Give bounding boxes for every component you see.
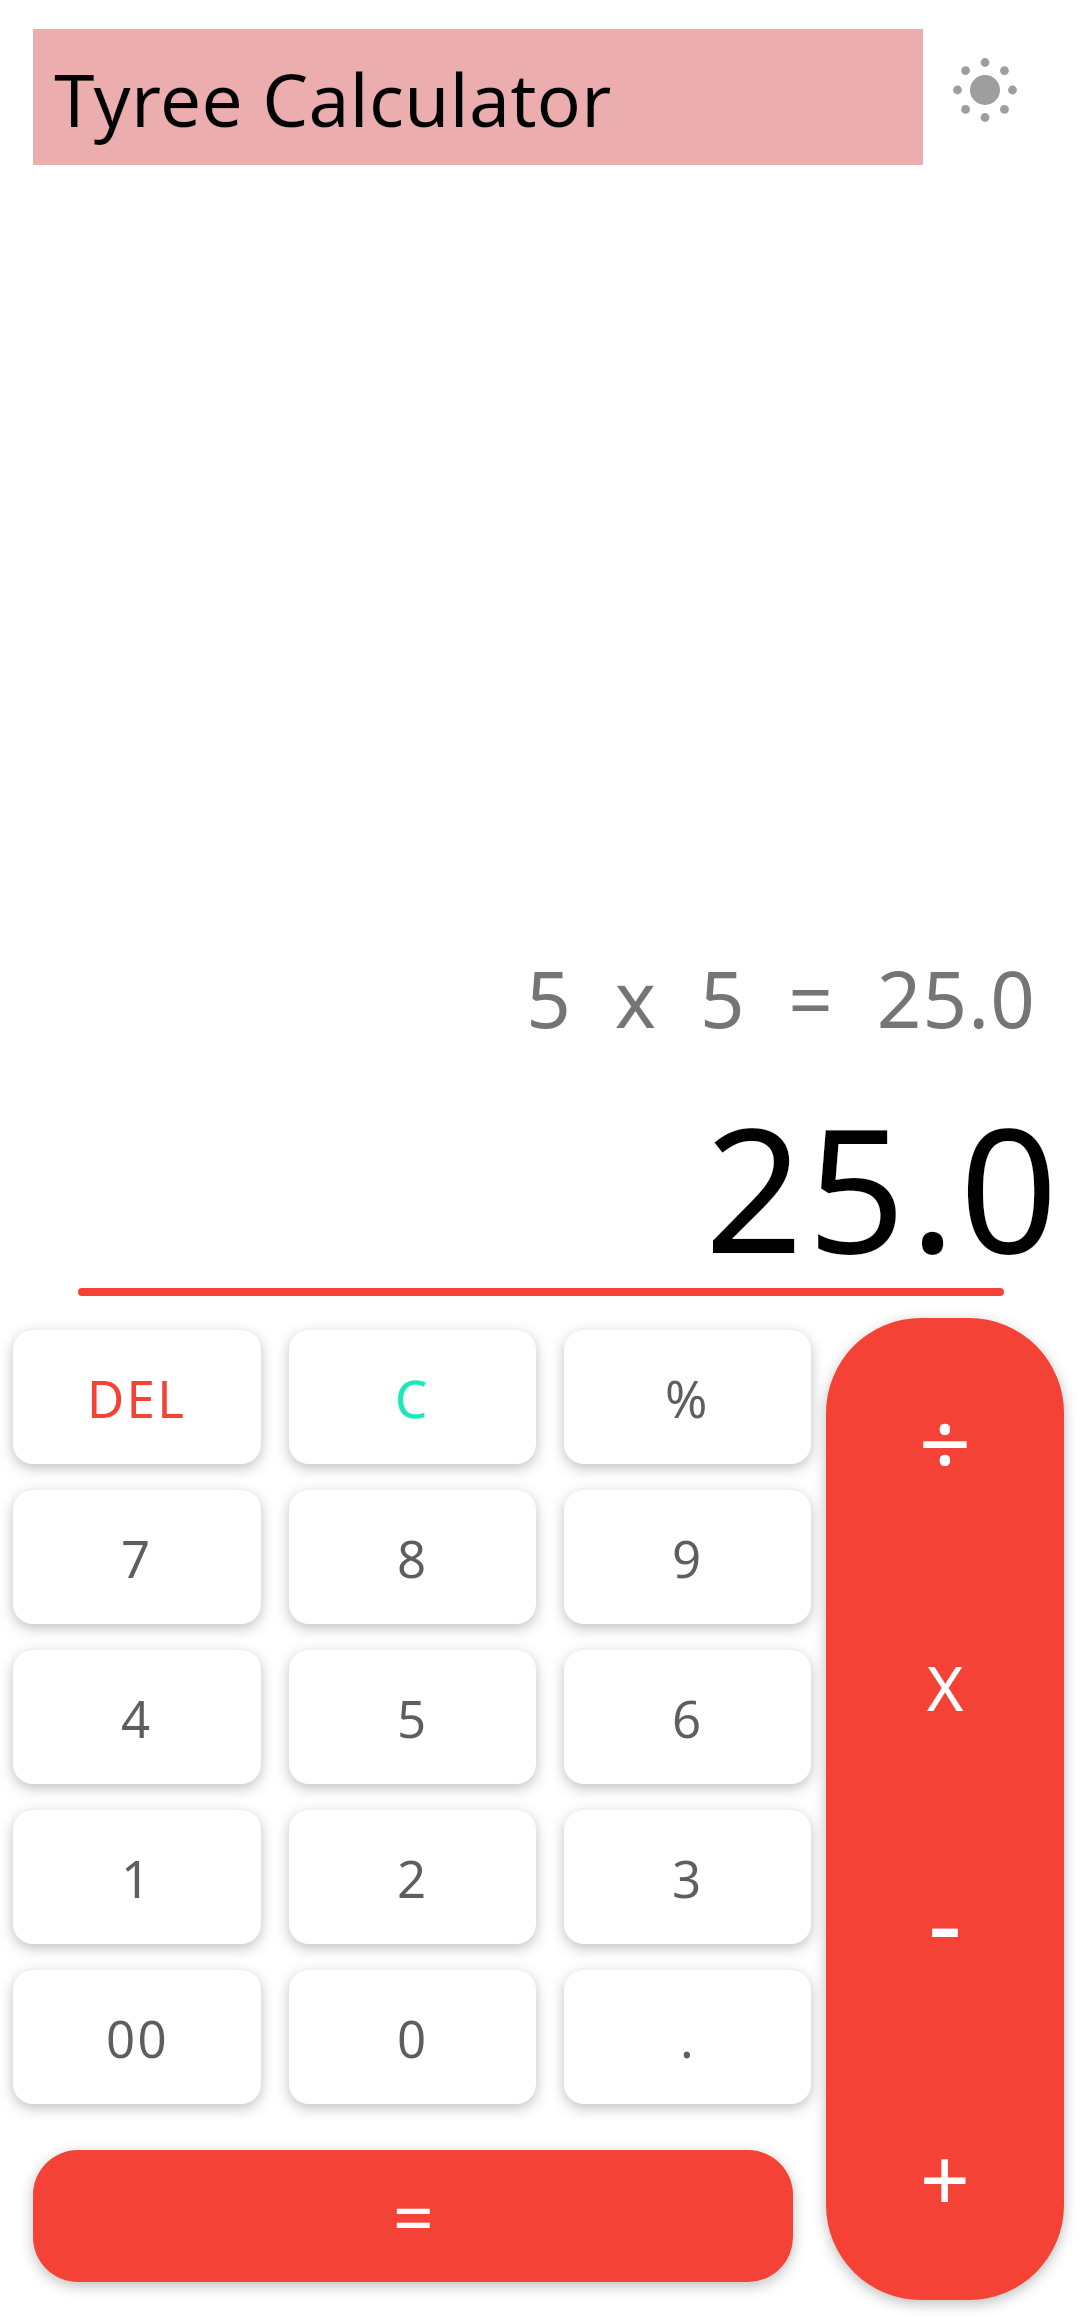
button[interactable]: . — [564, 1970, 811, 2104]
staticText: 8 — [397, 1523, 429, 1592]
button[interactable]: = — [33, 2150, 793, 2282]
button[interactable]: 6 — [564, 1650, 811, 1784]
staticText: 2 — [397, 1843, 429, 1912]
button[interactable]: 4 — [13, 1650, 261, 1784]
button[interactable]: 8 — [289, 1490, 536, 1624]
button[interactable]: C — [289, 1330, 536, 1464]
staticText: 5 x 5 = 25.0 — [0, 945, 1036, 1051]
button[interactable]: + — [826, 2054, 1064, 2300]
button[interactable]: 0 — [289, 1970, 536, 2104]
staticText: = — [393, 2168, 434, 2265]
button[interactable]: 7 — [13, 1490, 261, 1624]
button[interactable]: % — [564, 1330, 811, 1464]
staticText: Tyree Calculator — [54, 49, 612, 148]
button[interactable]: 9 — [564, 1490, 811, 1624]
button[interactable]: ÷ — [826, 1318, 1064, 1563]
staticText: 7 — [121, 1523, 153, 1592]
button[interactable]: 1 — [13, 1810, 261, 1944]
button[interactable]: 2 — [289, 1810, 536, 1944]
staticText: 00 — [106, 2003, 169, 2072]
staticText: % — [665, 1363, 710, 1432]
staticText: 6 — [672, 1683, 704, 1752]
button[interactable]: Tyree Calculator — [33, 29, 923, 165]
staticText: DEL — [87, 1363, 187, 1432]
staticText: ÷ — [919, 1380, 972, 1504]
staticText: + — [920, 2119, 970, 2237]
button[interactable]: X — [826, 1563, 1064, 1808]
staticText: - — [928, 1849, 962, 1992]
staticText: 1 — [121, 1843, 153, 1912]
button[interactable]: Toggle brightness — [931, 36, 1039, 144]
staticText: 0 — [397, 2003, 429, 2072]
staticText: . — [680, 2003, 696, 2072]
button[interactable]: 5 — [289, 1650, 536, 1784]
button[interactable]: DEL — [13, 1330, 261, 1464]
staticText: 5 — [397, 1683, 429, 1752]
staticText: 25.0 — [0, 1069, 1062, 1303]
staticText: 3 — [672, 1843, 704, 1912]
staticText: 4 — [121, 1683, 153, 1752]
button[interactable]: - — [826, 1808, 1064, 2054]
staticText: 9 — [672, 1523, 704, 1592]
staticText: X — [927, 1645, 964, 1729]
button[interactable]: 3 — [564, 1810, 811, 1944]
staticText: C — [395, 1363, 430, 1432]
button[interactable]: 00 — [13, 1970, 261, 2104]
